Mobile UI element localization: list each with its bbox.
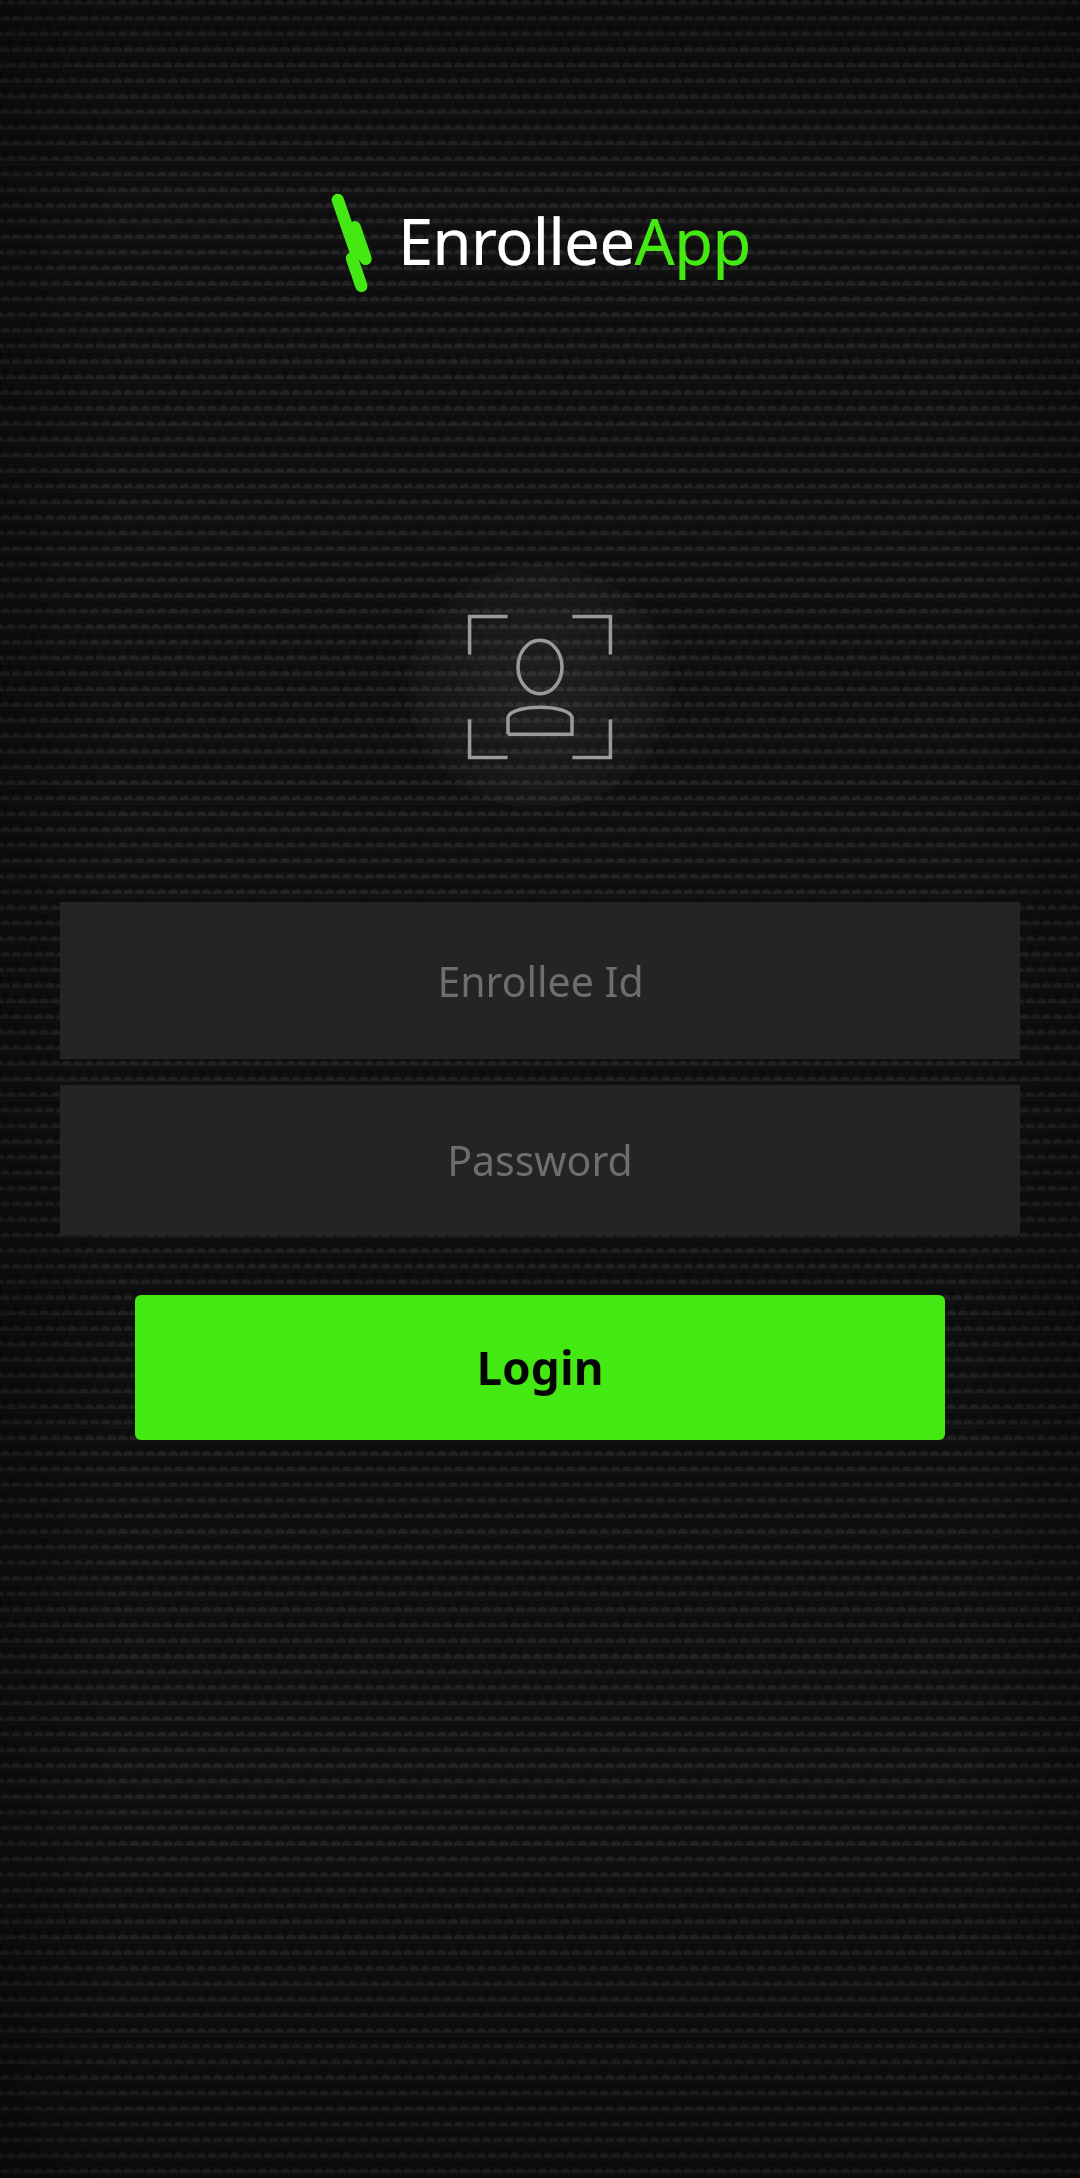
other: Scan face	[460, 607, 620, 767]
button[interactable]: Login	[135, 1295, 945, 1440]
staticText: EnrolleeApp	[398, 198, 751, 284]
button[interactable]: Password	[60, 1085, 1020, 1235]
button[interactable]: Enrollee Id	[60, 902, 1020, 1059]
staticText: Login	[476, 1336, 604, 1399]
staticText: Enrollee Id	[437, 953, 644, 1009]
staticText: Password	[447, 1132, 633, 1188]
